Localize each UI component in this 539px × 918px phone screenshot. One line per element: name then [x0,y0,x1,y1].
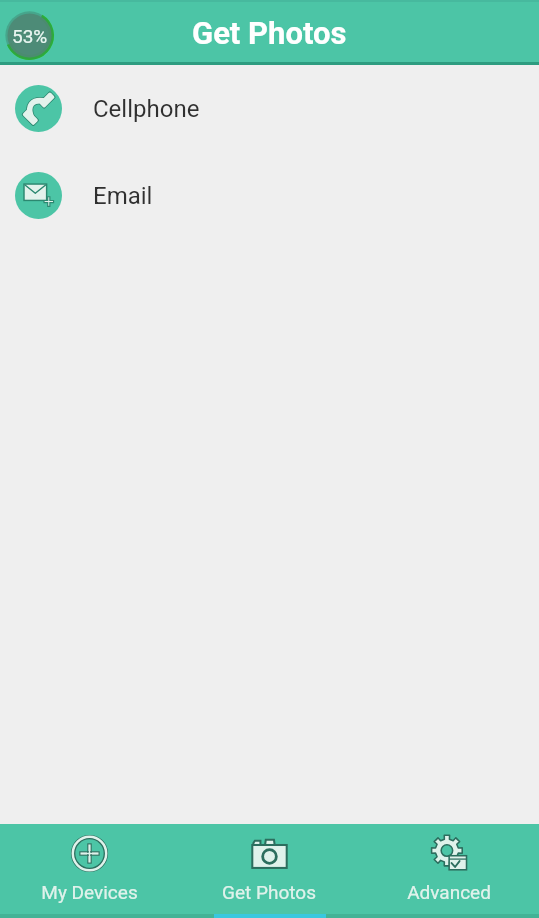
button[interactable]: Advanced [359,824,539,918]
staticText: 53% [12,25,48,47]
button[interactable]: Email [0,172,539,219]
staticText: Cellphone [93,95,200,123]
button[interactable]: Get Photos [179,824,359,918]
staticText: My Devices [41,881,138,903]
staticText: Advanced [407,881,491,903]
staticText: Get Photos [222,881,316,903]
button[interactable]: Cellphone [0,85,539,132]
button[interactable]: My Devices [0,824,179,918]
button[interactable]: Battery 53 percent [5,11,54,60]
staticText: Get Photos [192,15,347,51]
staticText: Email [93,182,153,210]
